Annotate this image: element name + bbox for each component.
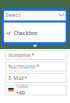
staticText: +49: [16, 89, 25, 96]
button[interactable]: Select: [2, 9, 67, 43]
staticText: *: [35, 63, 39, 70]
button[interactable]: E-Mail: [5, 73, 67, 82]
staticText: E-Mail: [8, 74, 23, 82]
staticText: *: [23, 74, 27, 82]
button[interactable]: Telefon: [5, 85, 67, 95]
staticText: Nachname: [8, 63, 35, 70]
staticText: Checkbox: [14, 29, 38, 37]
button[interactable]: Nachname: [5, 62, 67, 71]
staticText: Vorname: [8, 51, 30, 59]
staticText: *: [30, 51, 34, 59]
staticText: Telefon: [16, 84, 28, 89]
staticText: Select: [5, 11, 20, 19]
button[interactable]: Vorname: [5, 50, 67, 59]
